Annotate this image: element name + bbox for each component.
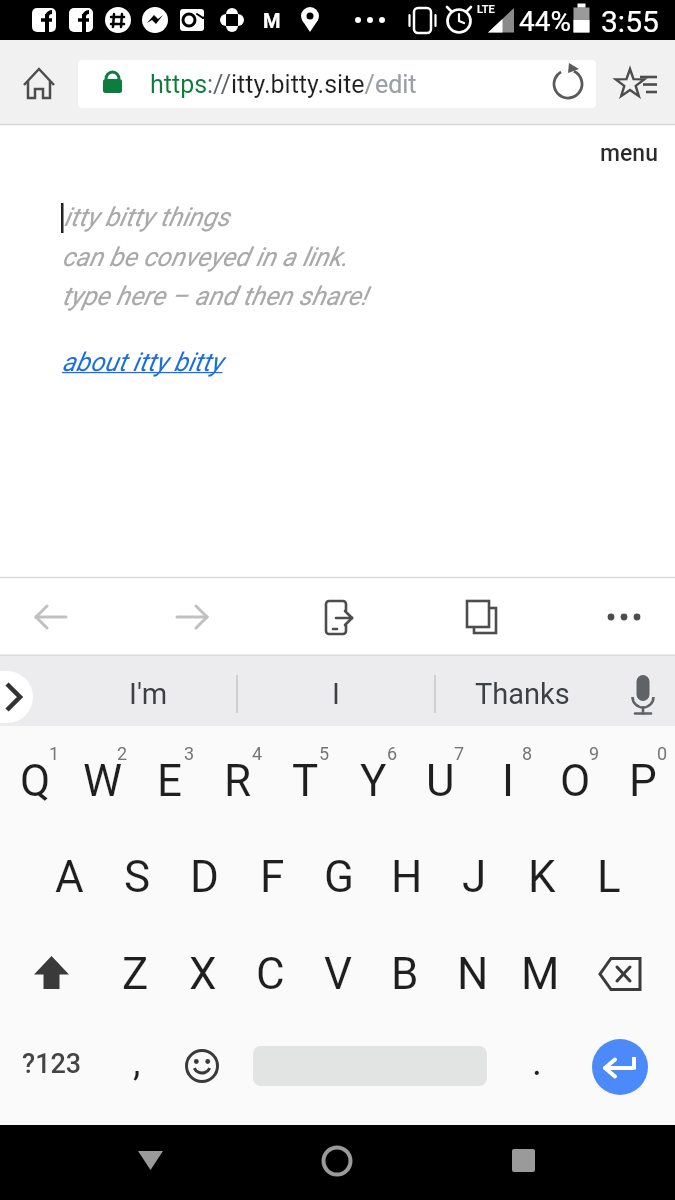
button[interactable] xyxy=(589,943,651,1003)
button[interactable] xyxy=(306,1131,368,1193)
button[interactable]: M xyxy=(507,927,573,1021)
button[interactable]: I'm xyxy=(48,670,248,718)
button[interactable] xyxy=(307,587,367,647)
staticText: L xyxy=(597,851,621,903)
staticText: Thanks xyxy=(475,677,570,711)
button[interactable] xyxy=(592,1039,648,1095)
button[interactable]: menu xyxy=(529,129,675,177)
staticText: R xyxy=(224,755,252,807)
button[interactable] xyxy=(20,587,80,647)
button[interactable] xyxy=(172,1038,232,1098)
staticText: 0 xyxy=(657,743,668,764)
staticText: O xyxy=(560,755,591,807)
staticText: about itty bitty xyxy=(62,347,223,377)
staticText: P xyxy=(629,755,657,807)
button[interactable]: H xyxy=(374,830,440,924)
button[interactable]: B xyxy=(372,927,438,1021)
button[interactable]: V xyxy=(305,927,371,1021)
staticText: G xyxy=(324,851,354,903)
staticText: I'm xyxy=(129,677,168,711)
button[interactable] xyxy=(0,671,33,723)
staticText: I xyxy=(332,677,340,711)
button[interactable]: J xyxy=(441,830,507,924)
button[interactable] xyxy=(594,587,654,647)
button[interactable]: U xyxy=(407,734,473,828)
staticText: V xyxy=(324,948,353,1000)
button[interactable]: A xyxy=(36,830,102,924)
button[interactable] xyxy=(162,587,222,647)
button[interactable]: F xyxy=(239,830,305,924)
staticText: X xyxy=(189,948,217,1000)
staticText: M xyxy=(521,948,560,1000)
button[interactable]: Y xyxy=(340,734,406,828)
staticText: B xyxy=(391,948,419,1000)
staticText: . xyxy=(532,1040,543,1085)
button[interactable]: W xyxy=(70,734,136,828)
staticText: Z xyxy=(122,948,149,1000)
staticText: 6 xyxy=(387,743,398,764)
staticText: M xyxy=(263,9,281,32)
button[interactable] xyxy=(610,58,665,108)
staticText: K xyxy=(528,851,556,903)
button[interactable]: K xyxy=(509,830,575,924)
button[interactable] xyxy=(613,664,673,724)
staticText: 3:55 xyxy=(601,4,659,39)
staticText: 5 xyxy=(319,743,330,764)
button[interactable]: Q xyxy=(2,734,68,828)
button[interactable]: P xyxy=(610,734,675,828)
button[interactable]: R xyxy=(205,734,271,828)
button[interactable]: O xyxy=(542,734,608,828)
button[interactable]: L xyxy=(576,830,642,924)
button[interactable]: X xyxy=(170,927,236,1021)
staticText: N xyxy=(457,948,489,1000)
staticText: F xyxy=(260,851,285,903)
button[interactable]: about itty bitty xyxy=(62,338,322,386)
button[interactable] xyxy=(78,60,596,108)
staticText: 8 xyxy=(522,743,533,764)
staticText: type here – and then share! xyxy=(62,281,368,311)
staticText: 9 xyxy=(589,743,600,764)
button[interactable] xyxy=(492,1131,554,1193)
staticText: LTE xyxy=(477,3,495,16)
staticText: 4 xyxy=(252,743,263,764)
staticText: 2 xyxy=(117,743,128,764)
button[interactable]: C xyxy=(237,927,303,1021)
staticText: A xyxy=(55,851,84,903)
staticText: 3 xyxy=(184,743,195,764)
button[interactable] xyxy=(120,1131,182,1193)
button[interactable]: . xyxy=(512,1032,562,1092)
staticText: W xyxy=(83,755,123,807)
staticText: 7 xyxy=(454,743,465,764)
button[interactable]: D xyxy=(171,830,237,924)
button[interactable]: E xyxy=(137,734,203,828)
button[interactable] xyxy=(450,587,510,647)
staticText: S xyxy=(124,851,151,903)
staticText: Q xyxy=(20,755,51,807)
button[interactable] xyxy=(14,58,64,108)
staticText: I xyxy=(502,755,514,807)
staticText: menu xyxy=(600,140,658,167)
button[interactable]: , xyxy=(112,1032,162,1092)
staticText: 1 xyxy=(49,743,60,764)
staticText: C xyxy=(256,948,285,1000)
button[interactable] xyxy=(20,943,82,1003)
button[interactable]: https://itty.bitty.site/edit xyxy=(150,60,550,108)
staticText: https://itty.bitty.site/edit xyxy=(150,70,417,99)
button[interactable]: T xyxy=(272,734,338,828)
button[interactable]: ?123 xyxy=(7,1034,97,1094)
button[interactable]: I xyxy=(475,734,541,828)
button[interactable]: N xyxy=(440,927,506,1021)
button[interactable]: Z xyxy=(102,927,168,1021)
staticText: Y xyxy=(360,755,387,807)
button[interactable]: G xyxy=(306,830,372,924)
button[interactable]: I xyxy=(236,670,436,718)
button[interactable] xyxy=(543,58,593,108)
staticText: ?123 xyxy=(22,1048,82,1080)
button[interactable]: S xyxy=(104,830,170,924)
button[interactable]: Thanks xyxy=(422,670,622,718)
staticText: , xyxy=(133,1040,141,1085)
staticText: U xyxy=(426,755,455,807)
staticText: J xyxy=(462,851,487,903)
staticText: itty bitty things xyxy=(64,202,230,232)
